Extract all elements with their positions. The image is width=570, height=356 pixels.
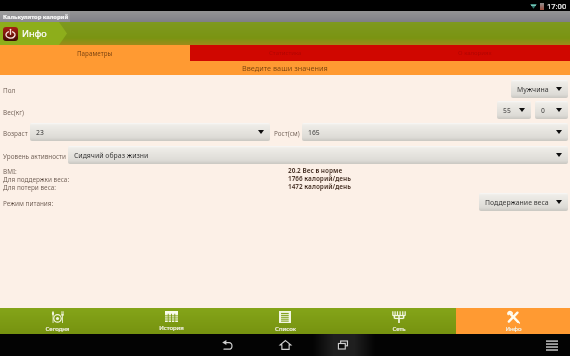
staticText: Сеть bbox=[392, 325, 406, 333]
staticText: 1766 калорий/день bbox=[288, 174, 351, 183]
staticText: Уровень активности bbox=[3, 152, 67, 161]
staticText: 20.2 Вес в норме bbox=[288, 166, 343, 175]
staticText: Статистика bbox=[269, 49, 302, 57]
button[interactable]: Back bbox=[217, 335, 237, 355]
button[interactable]: Power bbox=[3, 22, 67, 45]
staticText: Режим питания: bbox=[3, 199, 54, 208]
button[interactable]: Список bbox=[228, 308, 342, 334]
other: Power bbox=[3, 27, 18, 41]
staticText: Рост(см) bbox=[274, 129, 300, 138]
staticText: Сегодня bbox=[45, 325, 70, 333]
button[interactable]: Сеть bbox=[342, 308, 456, 334]
button[interactable]: Параметры bbox=[0, 45, 190, 61]
staticText: Инфо bbox=[505, 325, 522, 333]
button[interactable]: Инфо bbox=[456, 308, 570, 334]
staticText: 23 bbox=[36, 128, 44, 137]
button[interactable]: 23 bbox=[30, 123, 270, 141]
staticText: 0 bbox=[541, 106, 545, 115]
staticText: Возраст bbox=[3, 129, 28, 138]
button[interactable]: Home bbox=[275, 335, 295, 355]
staticText: Введите ваши значения bbox=[242, 63, 328, 73]
staticText: 17:00 bbox=[547, 1, 567, 11]
staticText: Список bbox=[275, 325, 296, 333]
staticText: 1472 калорий/день bbox=[288, 182, 351, 191]
staticText: Сидячий образ жизни bbox=[74, 151, 149, 160]
staticText: Калькулятор калорий bbox=[3, 13, 69, 21]
button[interactable]: Сидячий образ жизни bbox=[68, 146, 568, 164]
staticText: 165 bbox=[308, 128, 320, 137]
staticText: Параметры bbox=[77, 49, 113, 57]
staticText: BMI: bbox=[3, 167, 17, 176]
staticText: Пол bbox=[3, 86, 16, 95]
button[interactable]: 165 bbox=[302, 123, 568, 141]
staticText: История bbox=[159, 324, 184, 332]
staticText: О калориях bbox=[458, 49, 492, 57]
button[interactable]: Поддержание веса bbox=[479, 193, 568, 211]
button[interactable]: Recent apps bbox=[333, 335, 353, 355]
button[interactable]: Menu bbox=[544, 337, 560, 353]
staticText: Для поддержки веса: bbox=[3, 175, 70, 184]
staticText: 55 bbox=[503, 106, 511, 115]
staticText: Вес(кг) bbox=[3, 108, 24, 117]
button[interactable]: История bbox=[114, 308, 228, 334]
button[interactable]: 55 bbox=[497, 101, 531, 119]
staticText: Инфо bbox=[22, 27, 47, 40]
staticText: Мужчина bbox=[517, 85, 549, 94]
button[interactable]: 0 bbox=[535, 101, 568, 119]
staticText: Поддержание веса bbox=[485, 198, 549, 207]
button[interactable]: Мужчина bbox=[511, 80, 568, 98]
staticText: Для потери веса: bbox=[3, 183, 57, 192]
button[interactable]: Сегодня bbox=[0, 308, 114, 334]
